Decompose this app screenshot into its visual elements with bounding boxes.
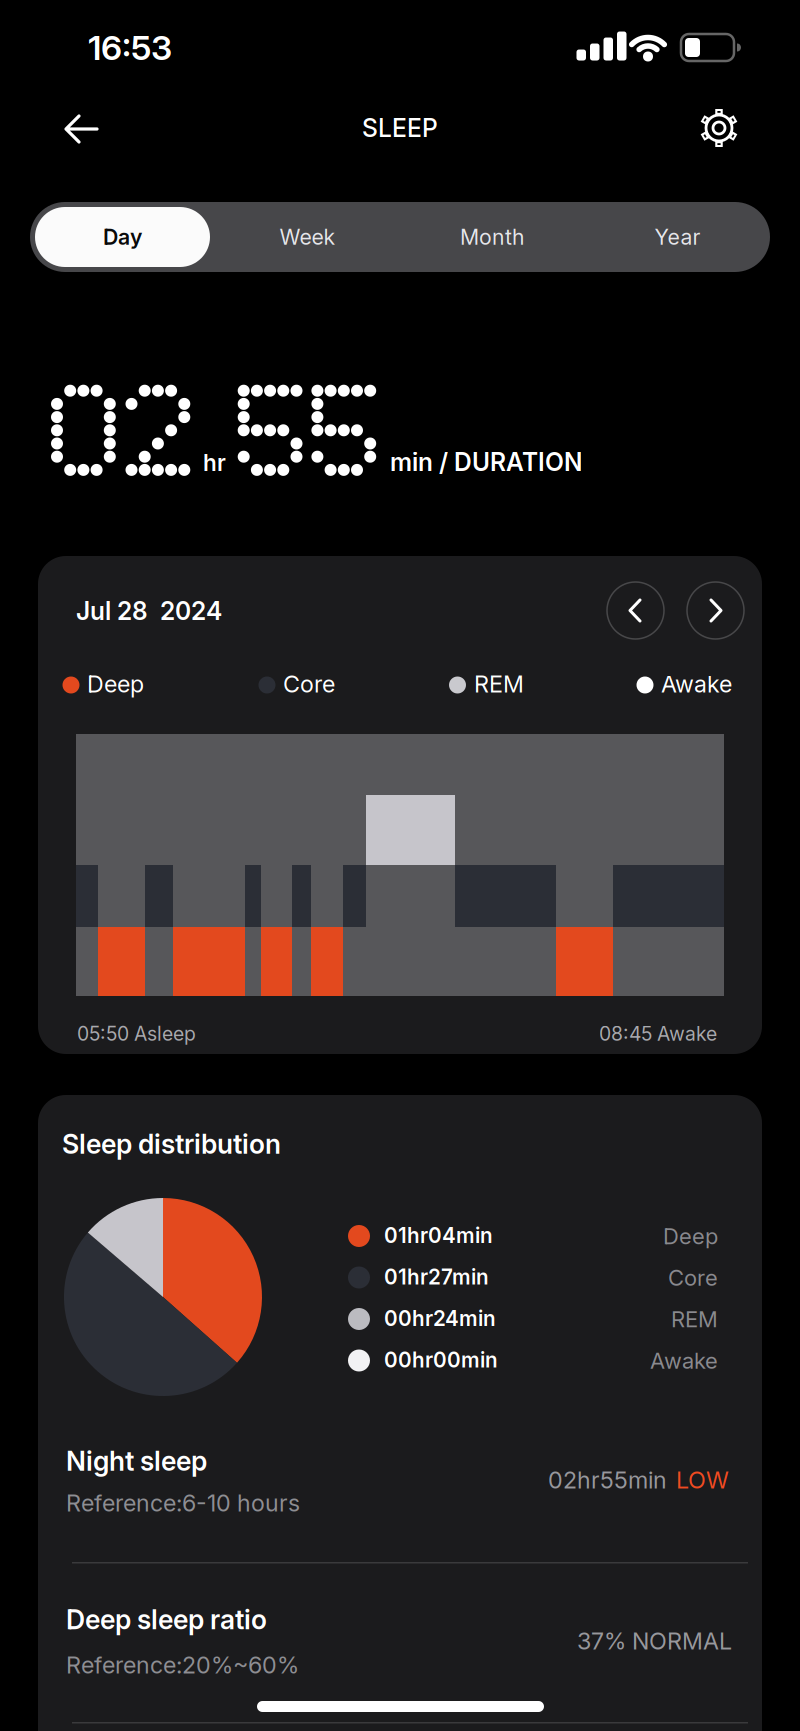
button[interactable]: Day — [30, 202, 215, 272]
staticText: 01hr04min — [384, 1223, 493, 1248]
staticText: Deep sleep ratio — [66, 1603, 267, 1636]
staticText: 02hr55min — [548, 1466, 667, 1494]
staticText: Day — [103, 224, 142, 250]
staticText: min / DURATION — [390, 447, 582, 477]
button[interactable]: Month — [400, 202, 585, 272]
staticText: hr — [203, 449, 226, 476]
staticText: Awake — [650, 1347, 718, 1374]
staticText: SLEEP — [362, 113, 438, 143]
staticText: 16:53 — [88, 27, 172, 68]
staticText: Reference:6-10 hours — [66, 1489, 300, 1517]
staticText: 08:45 Awake — [599, 1022, 717, 1045]
staticText: Month — [460, 224, 525, 250]
staticText: Night sleep — [66, 1445, 207, 1477]
staticText: Awake — [661, 670, 732, 698]
staticText: Jul 28 2024 — [76, 596, 222, 626]
staticText: Core — [283, 670, 335, 698]
staticText: 00hr24min — [384, 1306, 496, 1331]
staticText: Year — [654, 224, 700, 250]
staticText: 37% NORMAL — [577, 1627, 732, 1655]
staticText: REM — [671, 1306, 718, 1333]
button[interactable]: Week — [215, 202, 400, 272]
staticText: Deep — [87, 670, 144, 698]
staticText: Week — [279, 224, 335, 250]
button[interactable]: Back — [57, 107, 105, 151]
staticText: Deep — [663, 1223, 718, 1250]
staticText: Core — [668, 1264, 718, 1291]
button[interactable]: Previous day — [607, 582, 664, 639]
button[interactable]: Next day — [687, 582, 744, 639]
staticText: LOW — [676, 1466, 729, 1494]
button[interactable]: Year — [585, 202, 770, 272]
staticText: 05:50 Asleep — [77, 1022, 196, 1045]
staticText: REM — [474, 670, 524, 698]
staticText: Sleep distribution — [62, 1128, 281, 1160]
staticText: 00hr00min — [384, 1347, 498, 1372]
button[interactable]: Settings — [695, 104, 743, 152]
staticText: 01hr27min — [384, 1264, 489, 1289]
staticText: Reference:20%~60% — [66, 1651, 299, 1679]
